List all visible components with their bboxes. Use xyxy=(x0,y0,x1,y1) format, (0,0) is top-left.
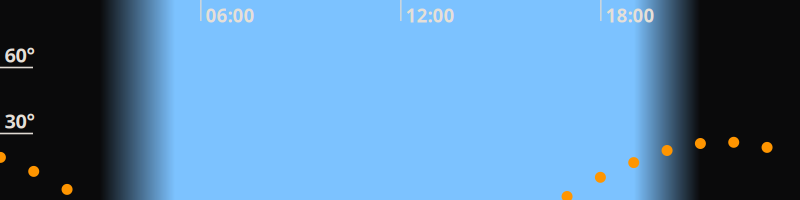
button[interactable]: Hourly temperature chart xyxy=(0,0,800,200)
staticText: 30° xyxy=(4,107,34,134)
staticText: 60° xyxy=(4,41,34,68)
staticText: 06:00 xyxy=(205,3,254,28)
staticText: 12:00 xyxy=(405,3,454,28)
staticText: 18:00 xyxy=(605,3,654,28)
